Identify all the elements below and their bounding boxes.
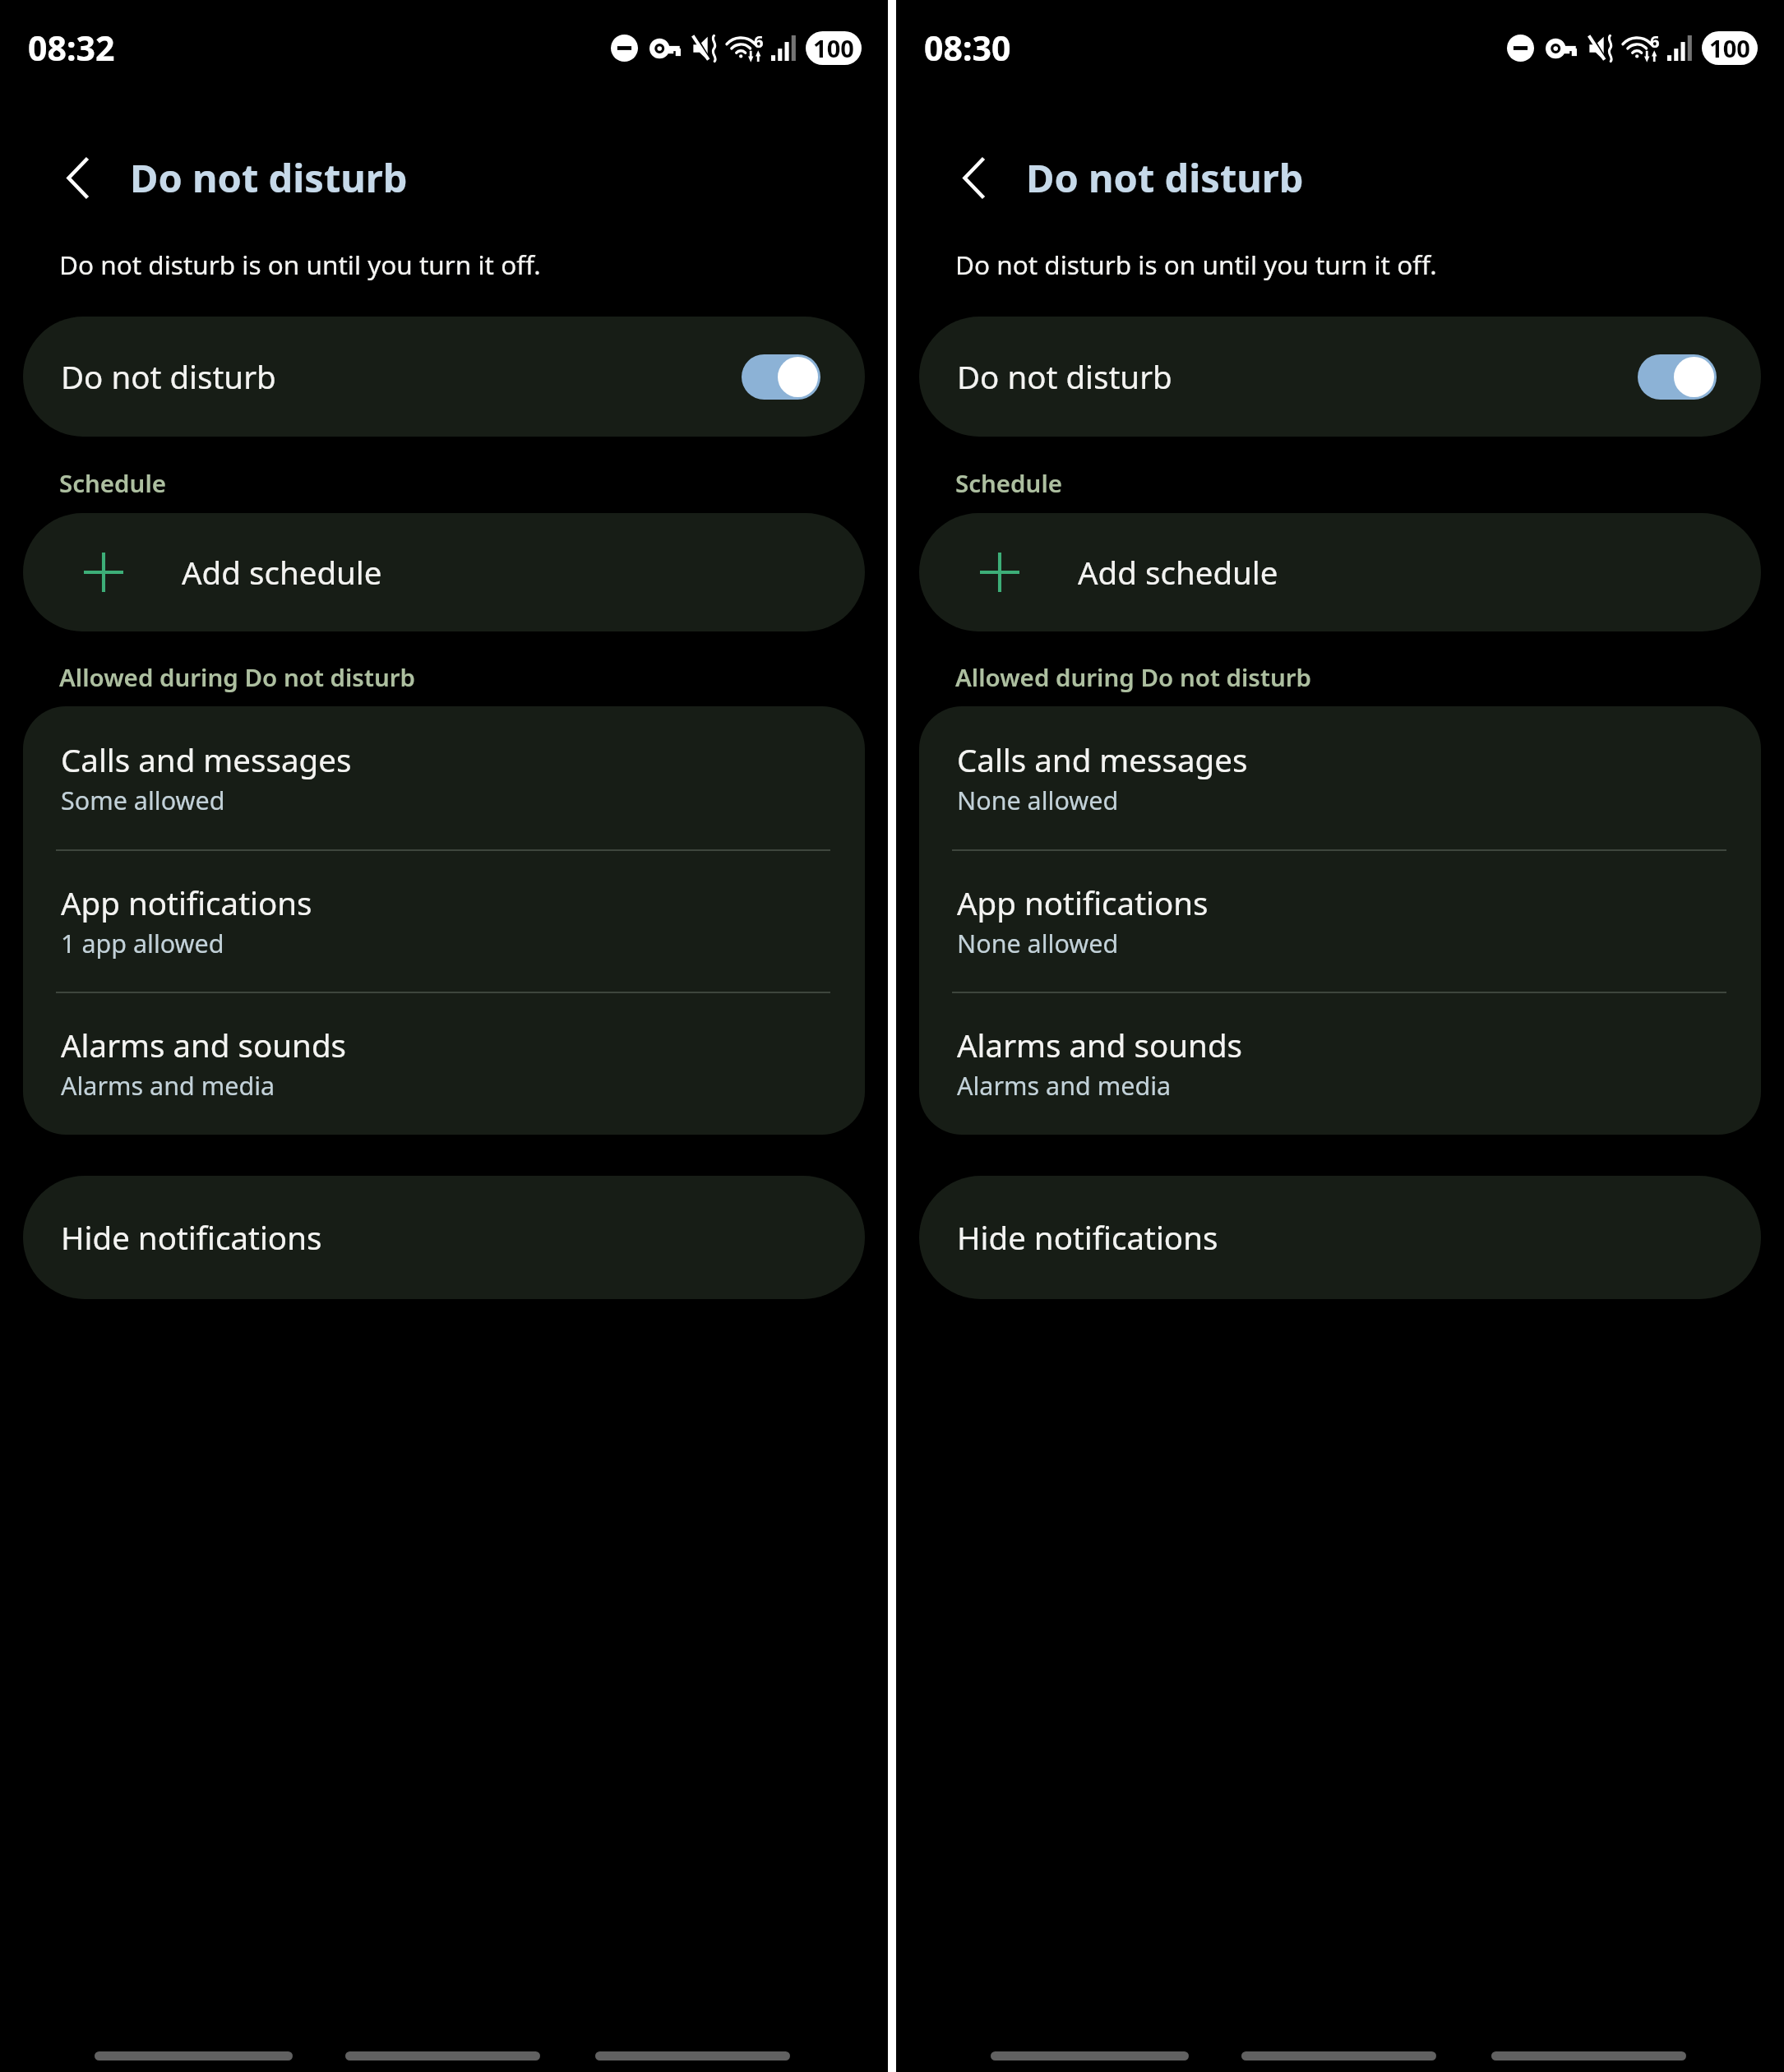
staticText: None allowed (957, 926, 1119, 960)
button[interactable]: Add schedule (919, 513, 1761, 631)
staticText: 08:32 (28, 25, 115, 71)
button[interactable]: App notifications (919, 849, 1761, 992)
staticText: Do not disturb (130, 151, 408, 204)
staticText: 100 (1709, 32, 1750, 64)
staticText: Alarms and sounds (957, 1024, 1243, 1066)
staticText: Hide notifications (61, 1216, 322, 1259)
staticText: None allowed (957, 783, 1119, 817)
button[interactable]: Hide notifications (23, 1176, 865, 1299)
staticText: Hide notifications (957, 1216, 1218, 1259)
staticText: 100 (813, 32, 854, 64)
staticText: Do not disturb is on until you turn it o… (59, 247, 541, 282)
button[interactable]: Do not disturb (23, 317, 865, 437)
staticText: Do not disturb is on until you turn it o… (955, 247, 1437, 282)
button[interactable]: App notifications (23, 849, 865, 992)
staticText: Alarms and media (957, 1068, 1172, 1103)
staticText: Do not disturb (1026, 151, 1304, 204)
staticText: Alarms and media (61, 1068, 275, 1103)
button[interactable]: Alarms and sounds (919, 992, 1761, 1135)
staticText: Add schedule (182, 551, 382, 594)
button[interactable]: Calls and messages (23, 706, 865, 849)
staticText: App notifications (957, 881, 1209, 924)
staticText: Do not disturb (61, 355, 276, 398)
staticText: Allowed during Do not disturb (955, 660, 1311, 693)
staticText: Allowed during Do not disturb (59, 660, 415, 693)
staticText: 6 (1650, 30, 1660, 53)
staticText: App notifications (61, 881, 312, 924)
button[interactable]: Back (936, 140, 1012, 215)
staticText: 08:30 (924, 25, 1011, 71)
staticText: 1 app allowed (61, 926, 224, 960)
button[interactable]: Alarms and sounds (23, 992, 865, 1135)
staticText: Calls and messages (61, 738, 352, 781)
button[interactable]: Calls and messages (919, 706, 1761, 849)
staticText: Calls and messages (957, 738, 1248, 781)
staticText: Add schedule (1078, 551, 1278, 594)
staticText: Do not disturb (957, 355, 1172, 398)
staticText: Alarms and sounds (61, 1024, 347, 1066)
staticText: Some allowed (61, 783, 225, 817)
staticText: Schedule (955, 466, 1063, 499)
button[interactable]: Back (40, 140, 116, 215)
button[interactable]: Hide notifications (919, 1176, 1761, 1299)
button[interactable]: Add schedule (23, 513, 865, 631)
staticText: 6 (754, 30, 764, 53)
staticText: Schedule (59, 466, 167, 499)
button[interactable]: Do not disturb (919, 317, 1761, 437)
